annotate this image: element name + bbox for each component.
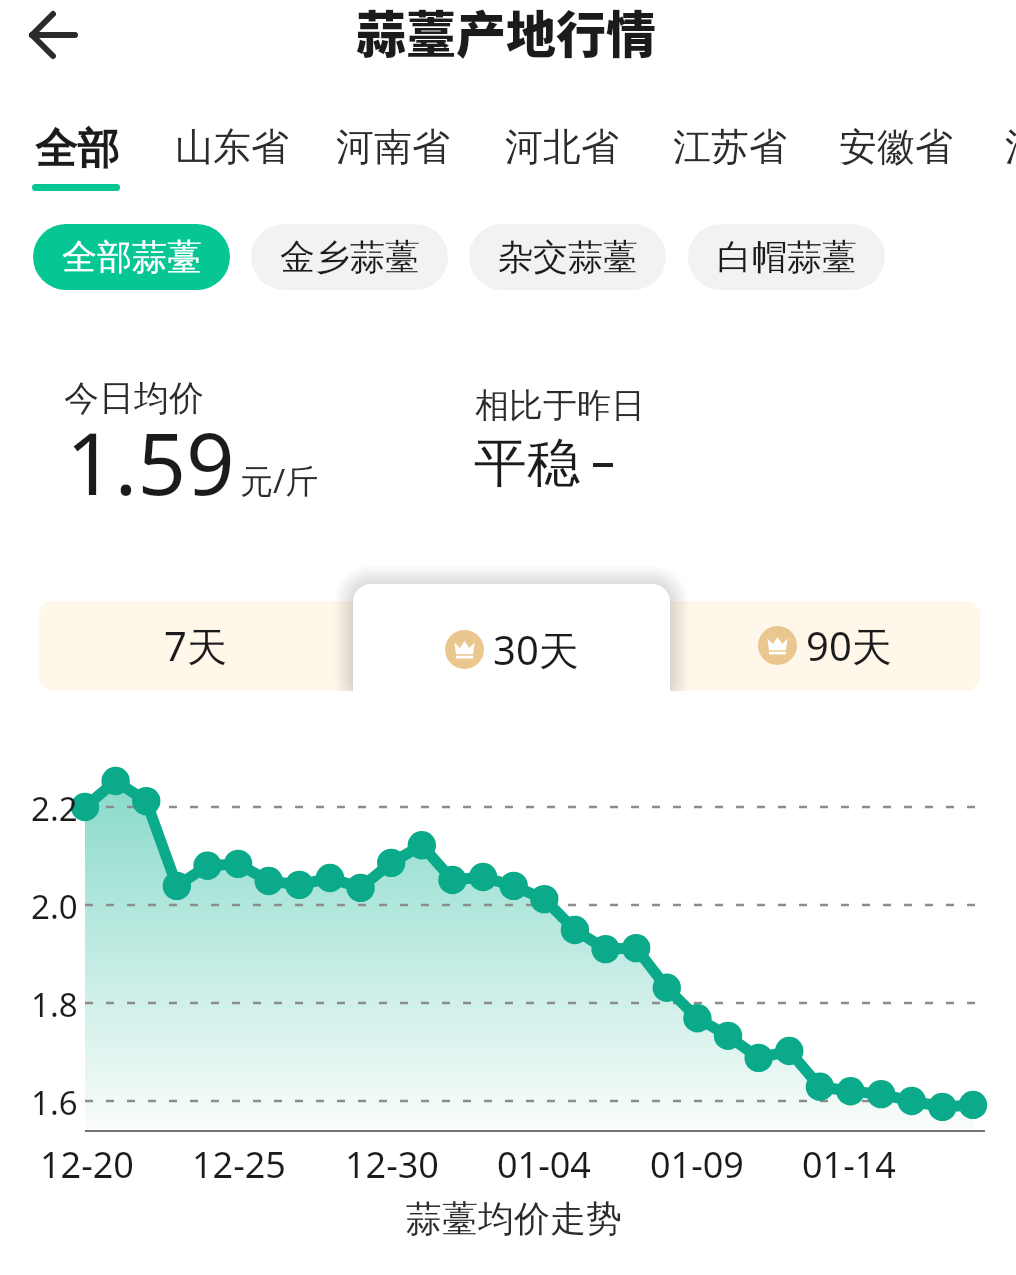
- button[interactable]: 河南: [1005, 123, 1016, 179]
- button[interactable]: 山东省: [175, 123, 289, 179]
- staticText: 河北省: [505, 123, 619, 171]
- staticText: 2.2: [31, 786, 78, 831]
- staticText: 平稳: [474, 430, 580, 497]
- staticText: 12-20: [40, 1140, 134, 1189]
- staticText: 相比于昨日: [475, 384, 645, 427]
- staticText: 1.8: [31, 982, 78, 1027]
- button[interactable]: 江苏省: [673, 123, 787, 179]
- staticText: 河南: [1005, 123, 1016, 171]
- staticText: 12-30: [345, 1140, 439, 1189]
- button[interactable]: 白帽蒜薹: [688, 224, 885, 290]
- staticText: 2.0: [31, 884, 78, 929]
- staticText: 元/斤: [240, 458, 319, 503]
- button[interactable]: 河南省: [336, 123, 450, 179]
- button[interactable]: 7天: [39, 601, 353, 691]
- staticText: 蒜薹产地行情: [356, 0, 656, 67]
- button[interactable]: 金乡蒜薹: [251, 224, 448, 290]
- staticText: 1.59: [66, 404, 235, 520]
- staticText: 白帽蒜薹: [717, 235, 857, 279]
- staticText: 01-09: [650, 1140, 744, 1189]
- staticText: 全部蒜薹: [62, 235, 202, 279]
- staticText: 金乡蒜薹: [280, 235, 420, 279]
- staticText: 30天: [493, 622, 579, 677]
- staticText: 1.6: [31, 1080, 78, 1125]
- staticText: 安徽省: [839, 123, 953, 171]
- staticText: 江苏省: [673, 123, 787, 171]
- staticText: 杂交蒜薹: [498, 235, 638, 279]
- staticText: 今日均价: [64, 376, 204, 420]
- staticText: 12-25: [192, 1140, 286, 1189]
- staticText: 7天: [164, 618, 227, 673]
- staticText: 90天: [806, 618, 892, 673]
- button[interactable]: 90天: [670, 601, 980, 691]
- staticText: 蒜薹均价走势: [406, 1196, 622, 1241]
- button[interactable]: Back: [8, 0, 94, 72]
- button[interactable]: 安徽省: [839, 123, 953, 179]
- staticText: 全部: [35, 123, 119, 176]
- staticText: 01-04: [497, 1140, 591, 1189]
- staticText: 山东省: [175, 123, 289, 171]
- staticText: 河南省: [336, 123, 450, 171]
- button[interactable]: 全部: [33, 123, 121, 191]
- button[interactable]: 30天: [353, 584, 670, 697]
- button[interactable]: 河北省: [505, 123, 619, 179]
- button[interactable]: 杂交蒜薹: [469, 224, 666, 290]
- staticText: 01-14: [802, 1140, 896, 1189]
- button[interactable]: 全部蒜薹: [33, 224, 230, 290]
